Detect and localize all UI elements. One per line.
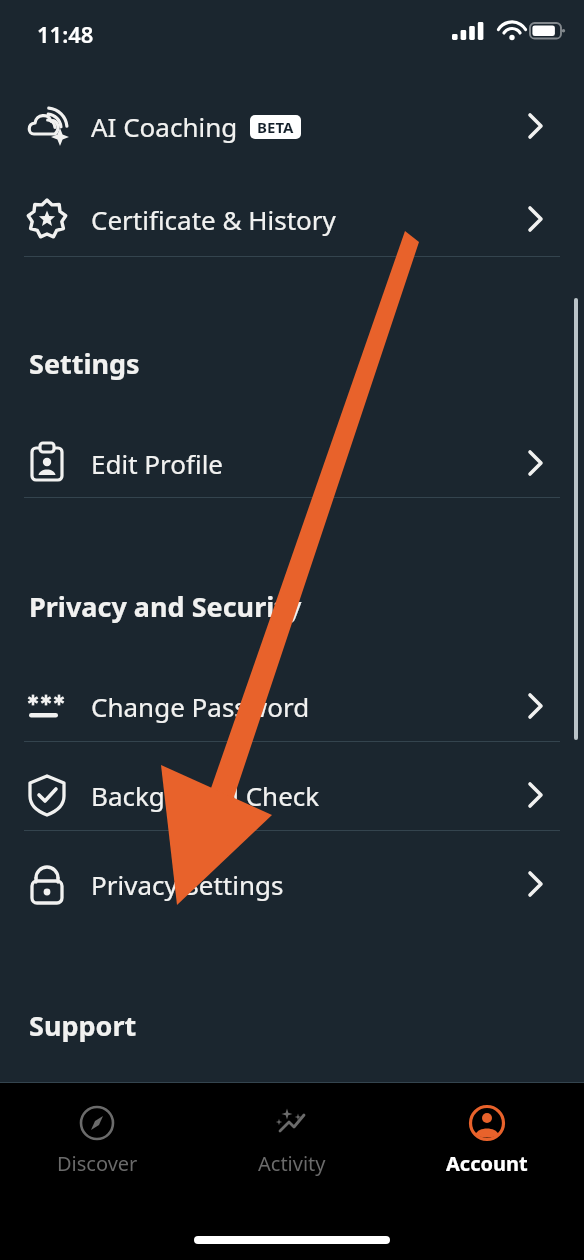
staticText: Discover — [57, 1150, 138, 1177]
button[interactable]: Background Check — [0, 761, 584, 829]
button[interactable]: Discover — [0, 1099, 194, 1181]
staticText: AI Coaching — [91, 109, 238, 144]
button[interactable]: Activity — [194, 1099, 389, 1181]
staticText: Support — [29, 1007, 137, 1044]
staticText: Privacy and Security — [29, 588, 302, 625]
staticText: Privacy Settings — [91, 867, 284, 902]
button[interactable]: Privacy Settings — [0, 850, 584, 918]
button[interactable]: AI Coaching — [0, 92, 584, 160]
staticText: Settings — [29, 345, 140, 382]
staticText: Background Check — [91, 778, 320, 813]
button[interactable]: Edit Profile — [0, 429, 584, 497]
staticText: BETA — [257, 117, 294, 137]
staticText: Change Password — [91, 689, 310, 724]
button[interactable]: Certificate & History — [0, 185, 584, 253]
staticText: Edit Profile — [91, 446, 224, 481]
button[interactable]: Change Password — [0, 672, 584, 740]
staticText: 11:48 — [37, 19, 94, 49]
staticText: Certificate & History — [91, 202, 336, 237]
button[interactable]: Account — [389, 1099, 584, 1181]
staticText: Account — [446, 1150, 528, 1177]
staticText: Activity — [258, 1150, 326, 1177]
